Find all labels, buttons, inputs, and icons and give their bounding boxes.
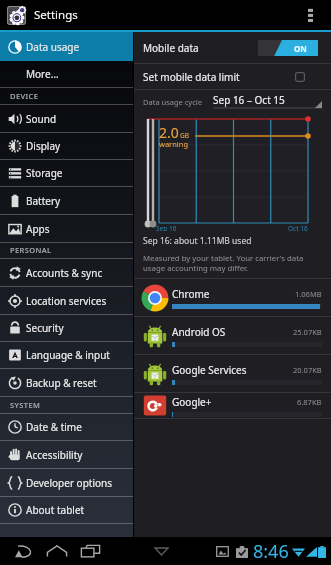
button[interactable]: Set mobile data limit checkbox	[295, 72, 305, 82]
button[interactable]: Sep 16 – Oct 15	[213, 90, 322, 113]
button[interactable]: Mobile data on	[258, 40, 318, 56]
button[interactable]: Home	[41, 537, 73, 565]
staticText: Sep 16: about 1.11MB used	[143, 235, 252, 247]
button[interactable]: Hide navigation	[148, 537, 174, 565]
staticText: SYSTEM	[10, 400, 41, 410]
button[interactable]: Set mobile data limit	[143, 64, 305, 89]
button[interactable]: Accessibility	[0, 441, 134, 468]
staticText: warning	[159, 139, 189, 149]
staticText: Developer options	[26, 476, 113, 490]
button[interactable]: Storage	[0, 160, 134, 186]
button[interactable]: Developer options	[0, 469, 134, 496]
button[interactable]: Recent apps	[74, 537, 106, 565]
button[interactable]: Mobile data	[143, 32, 318, 63]
staticText: Backup & reset	[26, 376, 97, 390]
button[interactable]: Backup & reset	[0, 369, 134, 396]
staticText: Date & time	[26, 420, 82, 434]
button[interactable]: Google+	[134, 393, 331, 419]
staticText: Mobile data	[143, 41, 199, 55]
staticText: 1.06MB	[295, 289, 322, 299]
staticText: Data usage cycle	[143, 97, 202, 107]
button[interactable]: Data usage	[0, 32, 134, 61]
staticText: Set mobile data limit	[143, 70, 240, 84]
staticText: Sep 16 – Oct 15	[213, 93, 285, 107]
staticText: Accessibility	[26, 448, 83, 462]
staticText: Settings	[34, 7, 78, 23]
button[interactable]: Display	[0, 133, 134, 159]
staticText: DEVICE	[10, 91, 39, 101]
button[interactable]: Date & time	[0, 414, 134, 440]
staticText: ON	[294, 43, 307, 54]
button[interactable]: Sound	[0, 105, 134, 132]
button[interactable]: More options	[299, 0, 321, 30]
button[interactable]: Location services	[0, 287, 134, 314]
button[interactable]: Status	[216, 539, 331, 564]
staticText: Language & input	[26, 348, 110, 362]
staticText: Oct 16	[288, 224, 308, 231]
staticText: About tablet	[26, 503, 85, 517]
button[interactable]: Apps	[0, 215, 134, 242]
staticText: PERSONAL	[10, 245, 52, 255]
staticText: Chrome	[172, 287, 210, 301]
staticText: Data usage	[26, 40, 80, 54]
staticText: Display	[26, 139, 61, 153]
staticText: Android OS	[172, 325, 226, 339]
button[interactable]: Chrome	[134, 279, 331, 317]
staticText: Google+	[172, 395, 212, 409]
button[interactable]: Battery	[0, 187, 134, 214]
staticText: 6.87KB	[297, 397, 322, 407]
staticText: Location services	[26, 294, 107, 308]
button[interactable]: Language & input	[0, 342, 134, 368]
staticText: 2.0	[159, 123, 179, 142]
button[interactable]: About tablet	[0, 497, 134, 523]
button[interactable]: Back	[8, 537, 40, 565]
button[interactable]: Security	[0, 315, 134, 341]
button[interactable]: Accounts & sync	[0, 259, 134, 286]
staticText: 8:46	[253, 539, 289, 564]
staticText: Measured by your tablet. Your carrier's …	[143, 253, 304, 273]
staticText: 25.07KB	[293, 327, 322, 337]
staticText: More…	[26, 67, 59, 81]
staticText: Google Services	[172, 363, 247, 377]
staticText: Security	[26, 321, 64, 335]
staticText: Sep 16	[156, 224, 177, 231]
staticText: GB	[180, 131, 189, 140]
staticText: 20.07KB	[293, 365, 322, 375]
staticText: Apps	[26, 222, 50, 236]
staticText: Battery	[26, 194, 61, 208]
staticText: Accounts & sync	[26, 266, 103, 280]
button[interactable]: Google Services	[134, 355, 331, 393]
staticText: Storage	[26, 166, 63, 180]
button[interactable]: More…	[0, 61, 134, 87]
staticText: Sound	[26, 112, 57, 126]
button[interactable]: Android OS	[134, 317, 331, 355]
